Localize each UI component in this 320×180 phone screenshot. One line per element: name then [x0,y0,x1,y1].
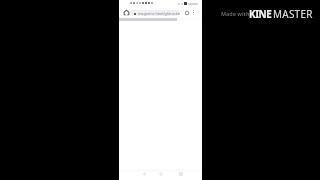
staticText: Made with [221,10,250,17]
staticText: magazine.html/ghtrucks/d [138,11,180,16]
button[interactable]: Home [156,169,166,179]
button[interactable]: Back [139,169,149,179]
button[interactable]: Recent apps [176,169,186,179]
button[interactable]: magazine.html/ghtrucks/d [130,10,180,16]
button[interactable]: Tabs [182,8,191,17]
button[interactable]: Home [121,8,131,17]
staticText: MASTER [273,7,313,20]
button[interactable]: More options [189,8,197,17]
staticText: KINE [249,7,272,20]
